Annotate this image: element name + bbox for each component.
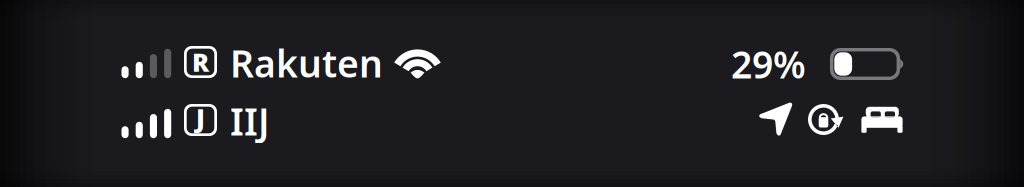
button[interactable]: Location Services active bbox=[758, 101, 794, 137]
button[interactable]: Sleep Focus on bbox=[860, 103, 904, 133]
button[interactable]: Rotation Lock on bbox=[808, 104, 844, 135]
staticText: J bbox=[196, 101, 205, 134]
staticText: 29% bbox=[731, 39, 806, 89]
staticText: Rakuten bbox=[230, 38, 383, 88]
staticText: IIJ bbox=[230, 96, 270, 146]
staticText: R bbox=[192, 45, 209, 79]
